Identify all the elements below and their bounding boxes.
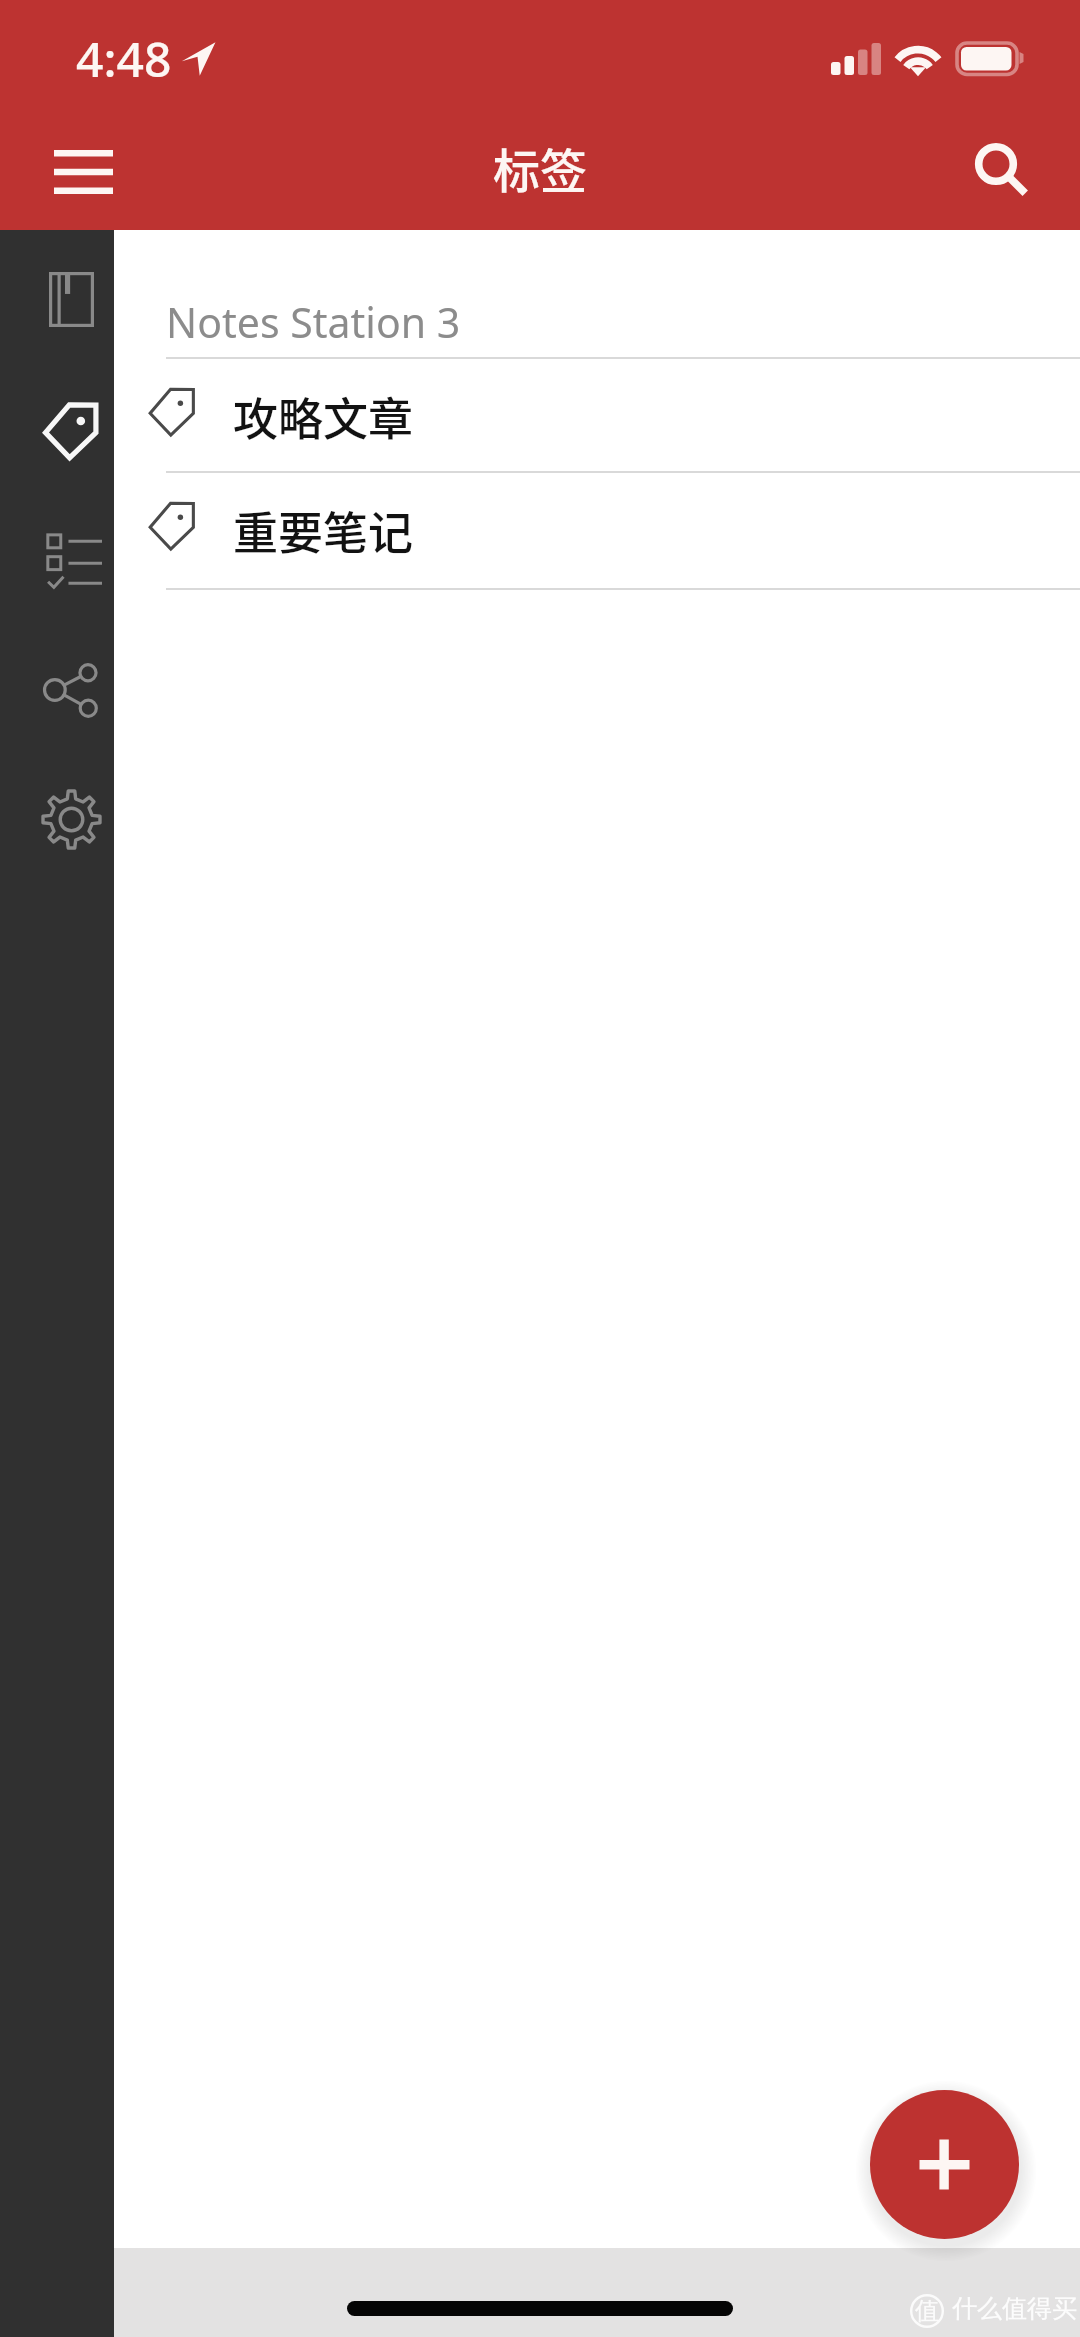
staticText: Notes Station 3: [166, 294, 461, 350]
button[interactable]: 攻略文章: [114, 359, 1080, 473]
staticText: 标签: [493, 133, 587, 201]
button[interactable]: Notebooks: [0, 250, 114, 349]
staticText: 攻略文章: [233, 384, 414, 449]
button[interactable]: Tasks: [0, 509, 114, 612]
button[interactable]: Tags: [0, 379, 114, 481]
staticText: 重要笔记: [233, 498, 414, 563]
staticText: 什么值得买: [952, 2293, 1077, 2324]
staticText: 4:48: [76, 26, 172, 91]
button[interactable]: 重要笔记: [114, 473, 1080, 590]
button[interactable]: Settings: [0, 766, 114, 873]
button[interactable]: Add tag: [870, 2090, 1019, 2239]
button[interactable]: Open navigation menu: [24, 126, 142, 218]
staticText: 值: [915, 2296, 939, 2326]
button[interactable]: Search: [952, 124, 1046, 218]
button[interactable]: Shared with me: [0, 642, 114, 739]
